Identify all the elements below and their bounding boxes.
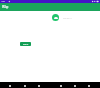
other: RPG App	[0, 3, 100, 11]
button[interactable]	[20, 42, 31, 46]
